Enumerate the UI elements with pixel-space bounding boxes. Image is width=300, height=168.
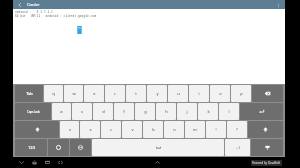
button[interactable]: More options — [274, 1, 282, 9]
staticText: r — [114, 91, 116, 96]
button[interactable]: i — [189, 85, 209, 102]
staticText: Tab — [26, 91, 33, 96]
staticText: o — [219, 91, 222, 96]
staticText: p — [240, 91, 243, 96]
button[interactable]: l — [219, 103, 239, 120]
button[interactable]: 123 — [15, 139, 47, 156]
button[interactable]: d — [93, 103, 113, 120]
button[interactable]: b — [143, 121, 163, 138]
staticText: :-) — [236, 145, 240, 150]
staticText: g — [144, 109, 147, 114]
button[interactable]: Tab — [15, 85, 43, 102]
staticText: n — [173, 127, 176, 132]
staticText: s — [81, 109, 83, 114]
staticText: ? — [236, 127, 238, 132]
button[interactable]: e — [84, 85, 104, 102]
staticText: android : ~ $ 1.7.1.1 — [15, 10, 53, 14]
button[interactable]: a — [52, 103, 71, 120]
staticText: x — [89, 127, 92, 132]
staticText: z — [69, 127, 71, 132]
staticText: 64 bit 00:11 android : clients.google.co… — [15, 14, 97, 18]
button[interactable]: h — [156, 103, 176, 120]
button[interactable]: Recent apps — [43, 158, 52, 167]
staticText: d — [102, 109, 105, 114]
button[interactable]: globe — [70, 139, 91, 156]
button[interactable]: gear — [48, 139, 69, 156]
button[interactable]: z — [60, 121, 79, 138]
staticText: l — [228, 109, 230, 114]
button[interactable]: Screenshot — [56, 158, 65, 167]
button[interactable]: g — [135, 103, 155, 120]
staticText: j — [186, 109, 188, 114]
staticText: m — [193, 127, 197, 132]
button[interactable]: j — [177, 103, 197, 120]
button[interactable]: c — [101, 121, 121, 138]
staticText: Caps Lock — [27, 110, 40, 114]
staticText: q — [52, 91, 55, 96]
staticText: f — [123, 109, 125, 114]
staticText: Cmder — [27, 2, 40, 7]
button[interactable]: Powered by CloudSoft — [251, 160, 282, 166]
button[interactable]: del — [252, 85, 283, 102]
staticText: b — [152, 127, 155, 132]
staticText: 123 — [28, 145, 35, 150]
staticText: v — [131, 127, 134, 132]
button[interactable]: w — [64, 85, 83, 102]
button[interactable]: o — [210, 85, 230, 102]
staticText: w — [72, 91, 76, 96]
button[interactable]: :-) — [225, 139, 250, 156]
button[interactable]: t — [126, 85, 146, 102]
button[interactable]: Caps Lock — [15, 103, 51, 120]
staticText: e — [93, 91, 96, 96]
staticText: i — [198, 91, 200, 96]
button[interactable]: r — [105, 85, 125, 102]
button[interactable]: k — [198, 103, 218, 120]
button[interactable]: Show keyboard — [153, 158, 162, 167]
button[interactable]: u — [168, 85, 188, 102]
staticText: a — [60, 109, 63, 114]
button[interactable]: hide — [251, 139, 283, 156]
button[interactable]: f — [114, 103, 134, 120]
button[interactable]: x — [80, 121, 100, 138]
staticText: Powered by CloudSoft — [252, 161, 281, 165]
staticText: ! — [215, 127, 217, 132]
button[interactable]: p — [231, 85, 251, 102]
button[interactable]: enter — [240, 103, 283, 120]
button[interactable]: n — [164, 121, 184, 138]
button[interactable]: s — [72, 103, 92, 120]
staticText: k — [207, 109, 210, 114]
button[interactable]: Home — [30, 158, 39, 167]
staticText: h — [165, 109, 168, 114]
button[interactable]: q — [44, 85, 63, 102]
staticText: u — [177, 91, 180, 96]
button[interactable]: Back — [16, 1, 24, 9]
button[interactable]: space — [92, 139, 224, 156]
staticText: c — [110, 127, 112, 132]
staticText: t — [135, 91, 137, 96]
button[interactable]: m — [185, 121, 205, 138]
button[interactable]: ! — [206, 121, 226, 138]
button[interactable]: ? — [227, 121, 247, 138]
staticText: y — [156, 91, 159, 96]
button[interactable]: Back — [17, 158, 26, 167]
button[interactable]: shift — [248, 121, 283, 138]
button[interactable]: shift — [15, 121, 59, 138]
button[interactable]: v — [122, 121, 142, 138]
button[interactable]: y — [147, 85, 167, 102]
